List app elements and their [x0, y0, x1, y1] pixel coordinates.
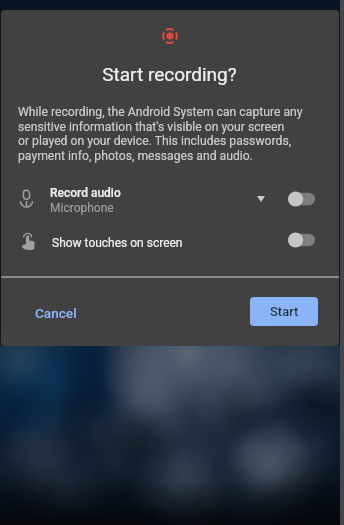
staticText: Start recording? [102, 63, 237, 85]
button[interactable]: Toggle [287, 230, 316, 250]
staticText: Record audio [50, 186, 121, 200]
staticText: payment info, photos, messages and audio… [18, 149, 253, 163]
staticText: Start [270, 304, 299, 319]
staticText: Microphone [50, 201, 114, 215]
button[interactable]: Start [250, 297, 318, 326]
button[interactable] [1, 219, 339, 262]
staticText: sensitive information that's visible on … [18, 120, 285, 134]
staticText: Cancel [35, 305, 77, 321]
button[interactable]: Cancel [23, 297, 89, 329]
staticText: Show touches on screen [52, 236, 183, 250]
button[interactable] [1, 176, 339, 219]
staticText: While recording, the Android System can … [18, 105, 303, 119]
button[interactable]: Toggle [287, 189, 316, 209]
staticText: or played on your device. This includes … [18, 134, 292, 148]
